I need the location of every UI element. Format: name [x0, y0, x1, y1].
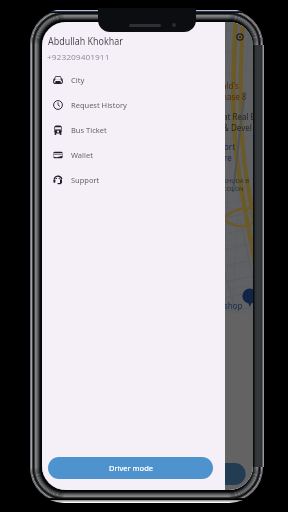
staticText: shop	[224, 300, 243, 311]
staticText: ort re	[224, 141, 236, 163]
staticText: Support	[71, 175, 100, 185]
staticText: at Real E & Devel	[223, 111, 253, 133]
staticText: Abdullah Khokhar	[48, 33, 123, 48]
button[interactable]: Bus Ticket	[42, 117, 225, 142]
button[interactable]: Driver mode	[48, 457, 213, 479]
button[interactable]: City	[42, 67, 225, 92]
staticText: ald's hase 8	[222, 80, 247, 102]
staticText: Wallet	[71, 150, 93, 160]
staticText: Bus Ticket	[71, 125, 107, 135]
staticText: Driver mode	[109, 463, 153, 473]
button[interactable]: Support	[42, 167, 225, 192]
staticText: Request History	[71, 100, 127, 110]
staticText: KHUDA B COLON	[223, 177, 250, 193]
button[interactable]: Wallet	[42, 142, 225, 167]
staticText: City	[71, 75, 85, 85]
button[interactable]: Request History	[42, 92, 225, 117]
staticText: +923209401911	[47, 52, 110, 62]
